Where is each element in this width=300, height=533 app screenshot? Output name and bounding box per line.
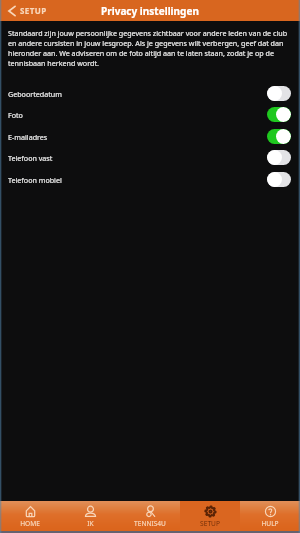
staticText: Telefoon vast bbox=[8, 153, 53, 163]
staticText: Foto bbox=[8, 110, 23, 120]
staticText: Standaard zijn jouw persoonlijke gegeven… bbox=[8, 28, 296, 68]
button[interactable]: Foto bbox=[0, 104, 300, 125]
button[interactable]: Back bbox=[0, 0, 52, 21]
other: Back bbox=[8, 5, 16, 17]
button[interactable]: HULP bbox=[240, 501, 300, 531]
staticText: SETUP bbox=[20, 5, 47, 16]
button[interactable]: Telefoon mobiel bbox=[0, 169, 300, 190]
staticText: E-mailadres bbox=[8, 132, 48, 142]
button[interactable]: IK bbox=[60, 501, 120, 531]
staticText: Geboortedatum bbox=[8, 89, 62, 99]
staticText: Telefoon mobiel bbox=[8, 175, 62, 185]
button[interactable]: Geboortedatum bbox=[0, 83, 300, 104]
button[interactable]: SETUP bbox=[180, 501, 240, 531]
button[interactable]: Telefoon vast bbox=[0, 147, 300, 168]
button[interactable]: E-mailadres bbox=[0, 126, 300, 147]
staticText: IK bbox=[87, 519, 94, 528]
staticText: Privacy instellingen bbox=[101, 4, 199, 18]
staticText: HULP bbox=[261, 519, 279, 528]
button[interactable]: TENNIS4U bbox=[120, 501, 180, 531]
button[interactable]: HOME bbox=[0, 501, 60, 531]
staticText: HOME bbox=[20, 519, 40, 528]
staticText: SETUP bbox=[200, 519, 220, 528]
staticText: TENNIS4U bbox=[134, 519, 166, 528]
